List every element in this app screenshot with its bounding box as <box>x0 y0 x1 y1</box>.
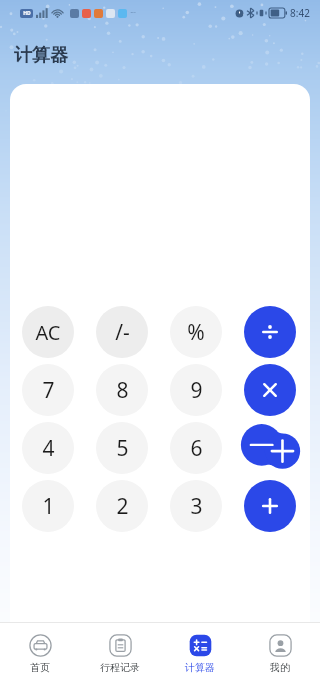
button[interactable]: 首页 <box>0 634 80 674</box>
staticText: 2 <box>116 492 129 521</box>
staticText: /- <box>115 318 130 347</box>
staticText: 8 <box>116 376 129 405</box>
button[interactable]: 4 <box>22 422 74 474</box>
button[interactable]: /- <box>96 306 148 358</box>
button[interactable]: 5 <box>96 422 148 474</box>
button[interactable]: % <box>170 306 222 358</box>
staticText: AC <box>35 319 61 346</box>
button[interactable]: 我的 <box>240 634 320 674</box>
staticText: 计算器 <box>14 44 68 67</box>
staticText: 3 <box>190 492 203 521</box>
staticText: 我的 <box>270 661 290 674</box>
staticText: ··· <box>130 8 136 18</box>
staticText: 行程记录 <box>100 661 140 674</box>
button[interactable]: 7 <box>22 364 74 416</box>
staticText: 6 <box>190 434 203 463</box>
button[interactable]: Subtract and Add <box>244 422 296 474</box>
button[interactable]: 1 <box>22 480 74 532</box>
staticText: 8:42 <box>290 6 310 20</box>
button[interactable]: Add <box>244 480 296 532</box>
staticText: HD <box>23 10 31 17</box>
button[interactable]: 2 <box>96 480 148 532</box>
staticText: 9 <box>190 376 203 405</box>
button[interactable]: 9 <box>170 364 222 416</box>
button[interactable]: 8 <box>96 364 148 416</box>
staticText: 5 <box>116 434 129 463</box>
button[interactable]: Divide <box>244 306 296 358</box>
button[interactable]: Multiply <box>244 364 296 416</box>
staticText: 1 <box>42 492 55 521</box>
staticText: 计算器 <box>185 661 215 674</box>
button[interactable]: 6 <box>170 422 222 474</box>
button[interactable]: 行程记录 <box>80 634 160 674</box>
button[interactable]: AC <box>22 306 74 358</box>
button[interactable]: 计算器 <box>160 634 240 674</box>
staticText: % <box>187 318 205 347</box>
staticText: 首页 <box>30 661 50 674</box>
staticText: 7 <box>42 376 55 405</box>
button[interactable]: 3 <box>170 480 222 532</box>
staticText: 4 <box>42 434 55 463</box>
